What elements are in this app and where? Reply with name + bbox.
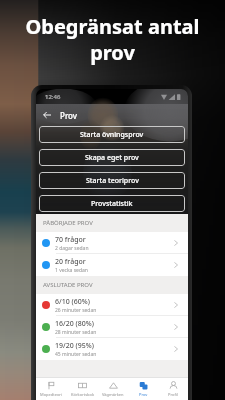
button[interactable]: 70 frågor (36, 232, 188, 254)
button[interactable]: 20 frågor (36, 254, 188, 276)
staticText: 6/10 (60%) (55, 297, 90, 307)
staticText: 2 dagar sedan (55, 245, 89, 252)
staticText: 16/20 (80%) (55, 319, 94, 329)
button[interactable]: 16/20 (80%) (36, 316, 188, 338)
staticText: PÅBÖRJADE PROV (43, 219, 93, 227)
staticText: Prov (60, 110, 78, 121)
button[interactable]: Starta teoriprov (39, 172, 185, 189)
staticText: 12:46 (45, 93, 61, 101)
staticText: 28 minuter sedan (55, 329, 97, 336)
button[interactable]: Vägmärken (98, 378, 128, 400)
button[interactable]: Mopedteori (36, 378, 67, 400)
staticText: 19/20 (95%) (55, 341, 94, 351)
button[interactable]: 6/10 (60%) (36, 294, 188, 316)
staticText: Körkortsbok (71, 392, 95, 397)
button[interactable]: Körkortsbok (67, 378, 98, 400)
button[interactable]: 19/20 (95%) (36, 338, 188, 360)
staticText: 45 minuter sedan (55, 351, 97, 358)
staticText: AVSLUTADE PROV (43, 281, 93, 289)
button[interactable]: Starta övningsprov (39, 126, 185, 143)
staticText: Obegränsat antal prov (25, 13, 200, 65)
staticText: 1 vecka sedan (55, 267, 88, 274)
button[interactable]: Profil (158, 378, 188, 400)
staticText: 20 frågor (55, 257, 86, 267)
staticText: Starta teoriprov (86, 176, 139, 186)
staticText: Skapa eget prov (85, 153, 139, 163)
button[interactable]: Skapa eget prov (39, 149, 185, 166)
staticText: 26 minuter sedan (55, 307, 97, 314)
button[interactable]: Prov (128, 378, 158, 400)
staticText: Mopedteori (40, 392, 63, 397)
staticText: Starta övningsprov (80, 130, 144, 140)
staticText: Provstatistik (91, 199, 133, 209)
button[interactable]: Back (40, 108, 54, 122)
staticText: 70 frågor (55, 235, 86, 245)
staticText: Vägmärken (102, 392, 124, 397)
staticText: Prov (139, 392, 148, 397)
staticText: Profil (168, 392, 178, 397)
button[interactable]: Provstatistik (39, 195, 185, 212)
